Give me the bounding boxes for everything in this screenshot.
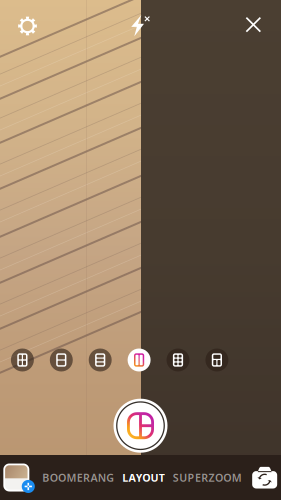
button[interactable]: Layout option [205,348,228,371]
button[interactable]: Switch camera [250,460,280,494]
staticText: LAYOUT [122,470,165,485]
button[interactable]: LAYOUT [122,470,165,485]
button[interactable]: Flash off [123,9,160,43]
staticText: SUPERZOOM [173,470,242,485]
button[interactable]: Gallery [0,460,34,494]
button[interactable]: Capture [111,397,169,455]
button[interactable]: Settings [9,9,46,43]
button[interactable]: BOOMERANG [42,470,114,485]
button[interactable]: SUPERZOOM [173,470,242,485]
button[interactable]: Layout option [89,348,112,371]
staticText: BOOMERANG [42,470,114,485]
button[interactable]: Layout option [166,348,189,371]
button[interactable]: Layout option [11,348,34,371]
button[interactable]: Layout option [128,348,151,371]
button[interactable]: Layout option [50,348,73,371]
button[interactable]: Close [235,9,272,43]
